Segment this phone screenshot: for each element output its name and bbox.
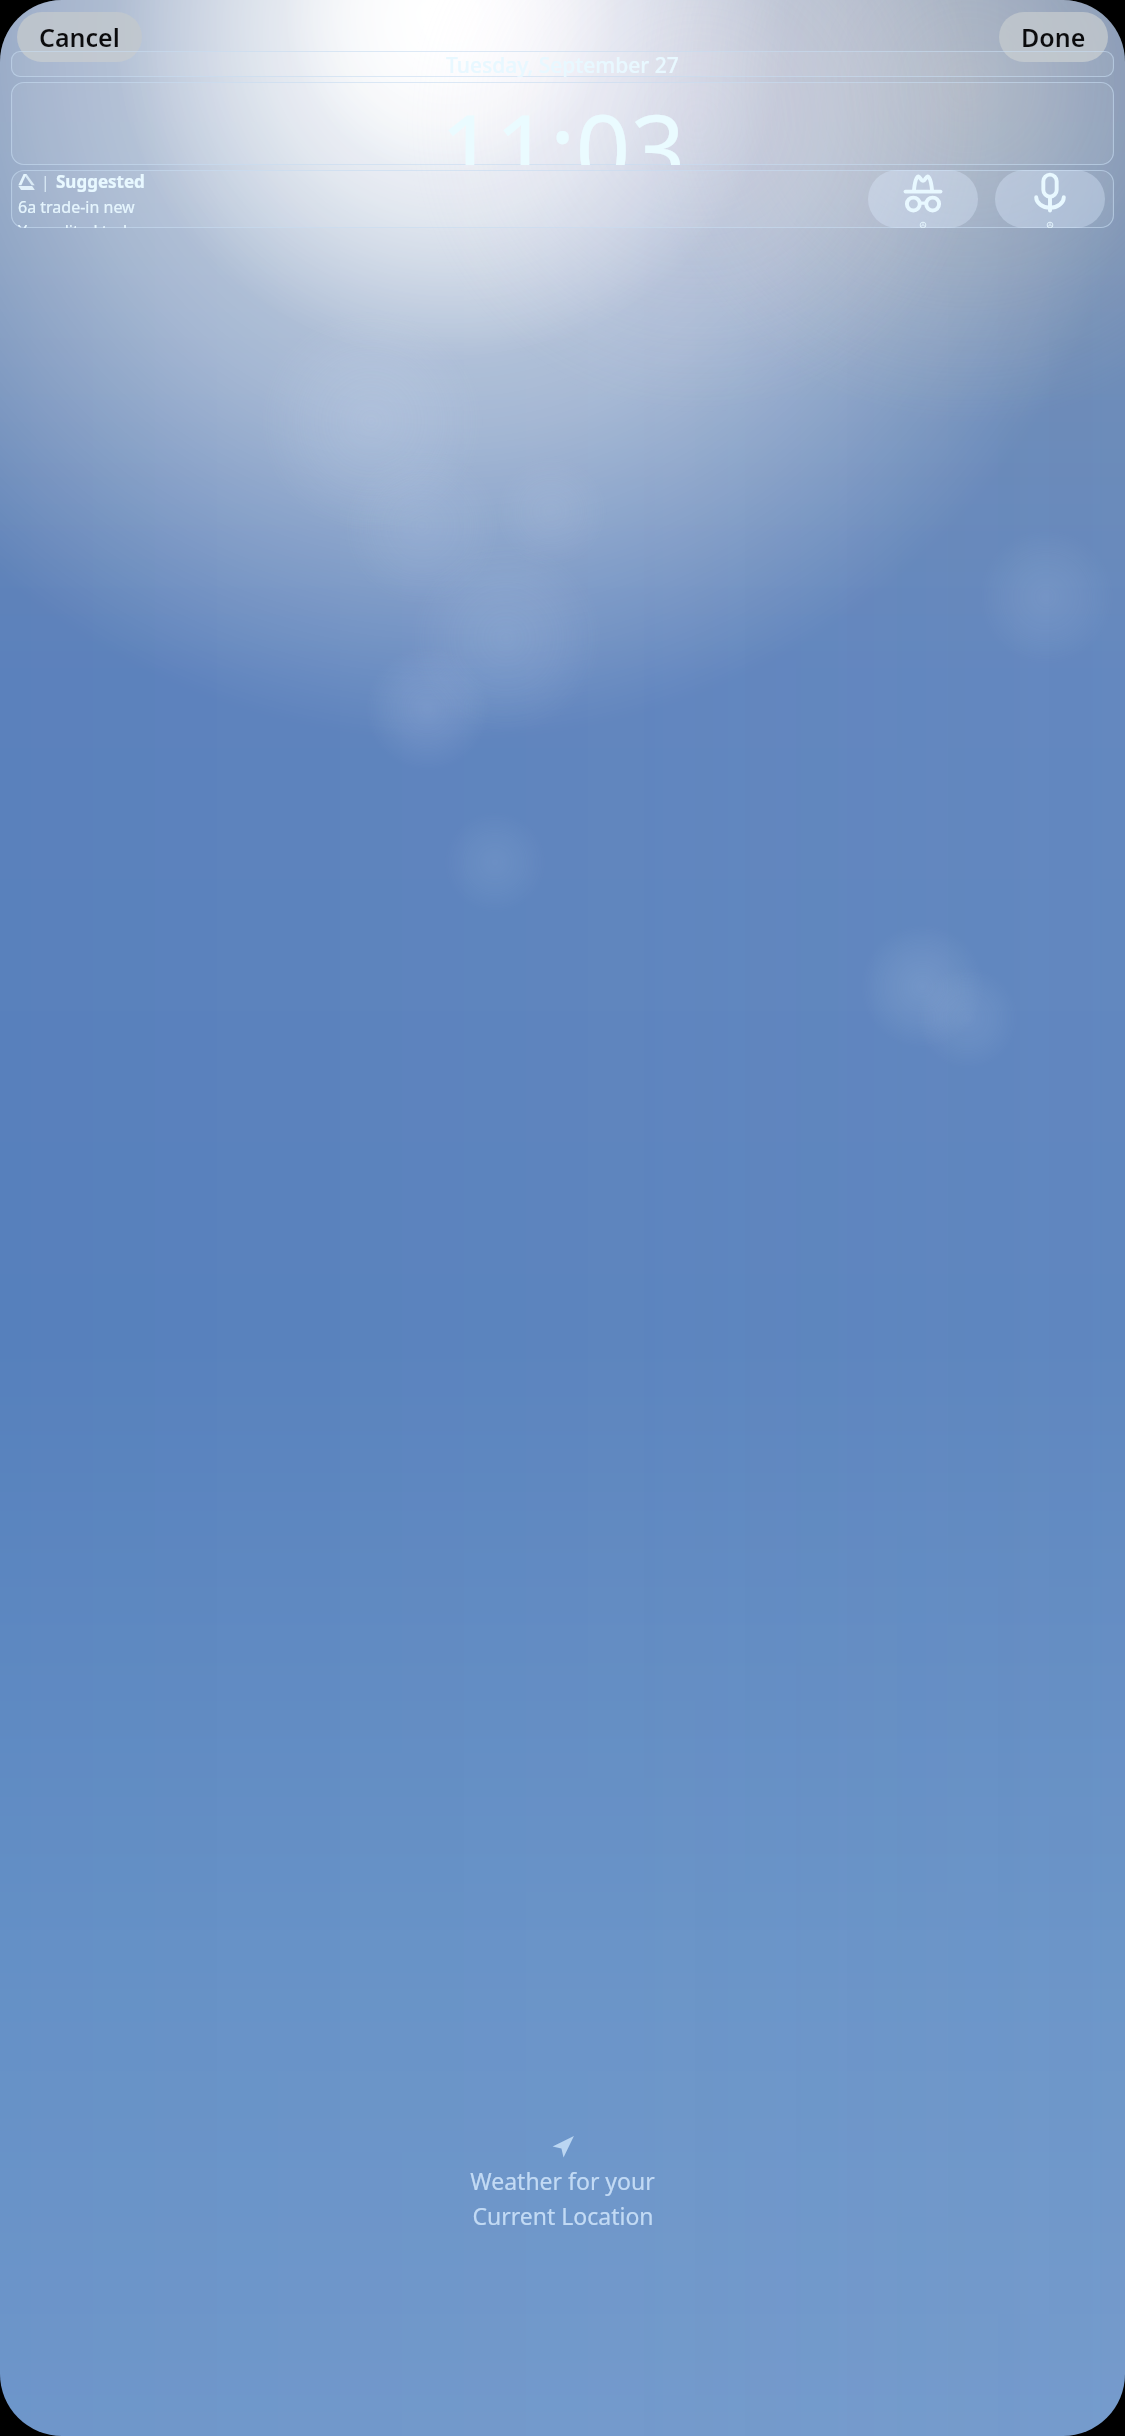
staticText: 11:03 bbox=[440, 82, 686, 165]
staticText: | bbox=[41, 171, 50, 193]
staticText: Cancel bbox=[39, 20, 120, 54]
staticText: 6a trade-in new bbox=[18, 196, 135, 218]
button[interactable]: Voice search in Chrome bbox=[995, 170, 1105, 228]
button[interactable]: | bbox=[11, 170, 1114, 228]
button[interactable]: Done bbox=[999, 12, 1108, 62]
staticText: You edited today bbox=[18, 220, 145, 228]
staticText: Current Location bbox=[472, 2200, 654, 2231]
button[interactable]: Tuesday, September 27 bbox=[11, 51, 1114, 77]
button[interactable]: Cancel bbox=[17, 12, 142, 62]
button[interactable]: Open incognito tab in Chrome bbox=[868, 170, 978, 228]
staticText: Done bbox=[1021, 20, 1086, 54]
button[interactable]: 11:03 bbox=[11, 82, 1114, 165]
staticText: Weather for your bbox=[470, 2165, 655, 2196]
staticText: Suggested bbox=[56, 170, 145, 193]
staticText: Tuesday, September 27 bbox=[446, 51, 679, 77]
button[interactable]: Weather for your Current Location bbox=[0, 2133, 1125, 2231]
